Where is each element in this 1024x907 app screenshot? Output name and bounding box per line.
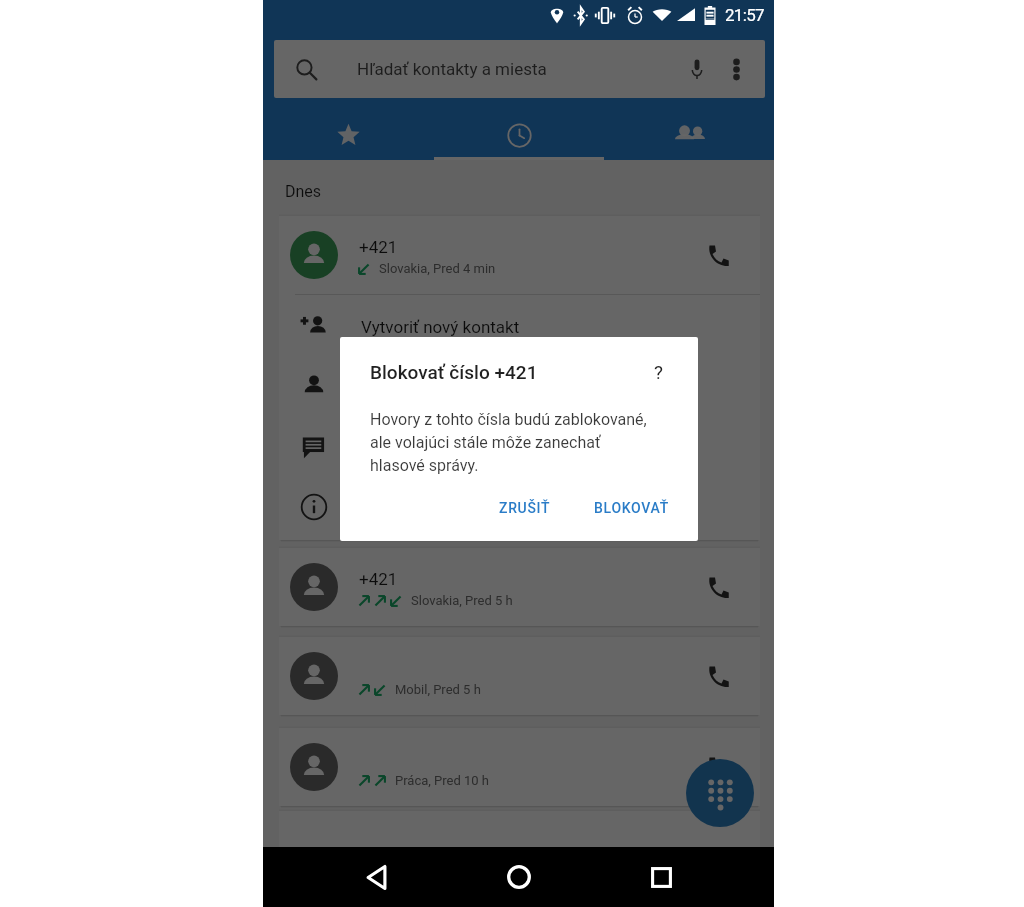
staticText: Hovory z tohto čísla budú zablokované, a… — [370, 410, 647, 475]
button[interactable]: Favourites — [263, 98, 434, 160]
button[interactable]: Hľadať kontakty a miesta — [274, 40, 765, 98]
button[interactable]: Contacts — [604, 98, 774, 160]
staticText: Odoslať správu — [361, 437, 475, 457]
staticText: Vytvoriť nový kontakt — [361, 317, 520, 337]
button[interactable]: Home — [495, 853, 543, 901]
button[interactable]: Help — [644, 358, 672, 386]
button[interactable]: Pridať ku kontaktu — [279, 357, 760, 417]
staticText: Pridať ku kontaktu — [361, 377, 499, 397]
button[interactable]: Back — [352, 853, 400, 901]
staticText: Práca, Pred 10 h — [395, 773, 490, 788]
staticText: Slovakia, Pred 4 min — [379, 261, 496, 276]
staticText: Slovakia, Pred 5 h — [411, 593, 513, 608]
button[interactable]: Call — [695, 745, 739, 789]
staticText: Mobil, Pred 5 h — [395, 682, 481, 697]
staticText: Podrobnosti hovoru — [361, 497, 510, 517]
button[interactable]: ZRUŠIŤ — [490, 492, 560, 524]
button[interactable]: Mobil, Pred 5 h — [279, 637, 760, 715]
button[interactable]: Call — [695, 654, 739, 698]
button[interactable]: Call — [695, 565, 739, 609]
button[interactable]: Recents — [637, 853, 685, 901]
button[interactable]: +421 — [279, 548, 760, 626]
button[interactable]: Práca, Pred 10 h — [279, 728, 760, 806]
staticText: BLOKOVAŤ — [594, 500, 669, 516]
button[interactable]: BLOKOVAŤ — [585, 492, 678, 524]
staticText: +421 — [359, 569, 398, 589]
staticText: +421 — [359, 237, 398, 257]
staticText: ? — [654, 361, 663, 383]
button[interactable]: Vytvoriť nový kontakt — [279, 297, 760, 357]
button[interactable] — [279, 811, 760, 889]
staticText: Blokovať číslo +421 — [370, 361, 538, 383]
button[interactable]: Call — [695, 233, 739, 277]
button[interactable]: Recents — [434, 98, 604, 160]
button[interactable]: Dialpad — [686, 759, 754, 827]
staticText: Dnes — [285, 182, 322, 201]
staticText: Hľadať kontakty a miesta — [357, 59, 547, 79]
staticText: ZRUŠIŤ — [499, 500, 551, 516]
staticText: 21:57 — [725, 5, 764, 25]
button[interactable]: Odoslať správu — [279, 417, 760, 477]
button[interactable]: Podrobnosti hovoru — [279, 477, 760, 537]
